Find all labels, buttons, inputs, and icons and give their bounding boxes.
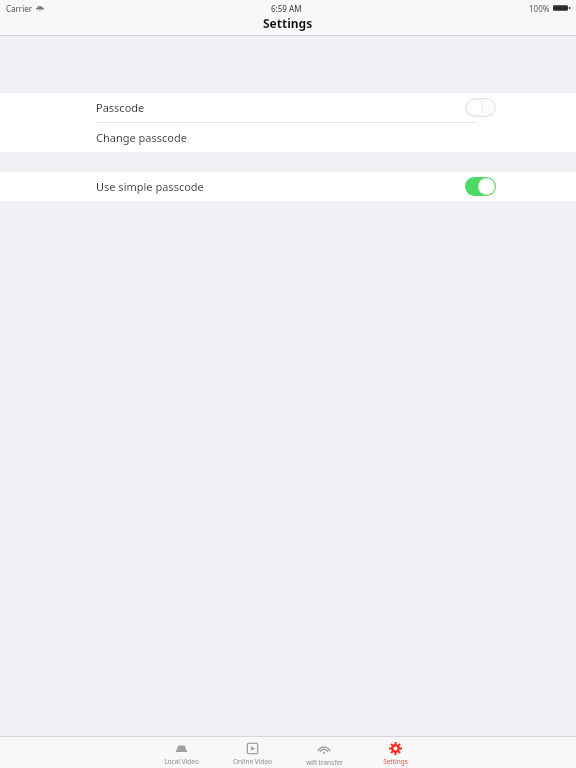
staticText: Local Video [164, 757, 199, 766]
button[interactable]: Off [465, 98, 496, 117]
button[interactable]: Use simple passcode [0, 172, 576, 201]
button[interactable]: Settings [364, 736, 426, 768]
staticText: Settings [263, 15, 313, 31]
staticText: Passcode [96, 100, 145, 115]
staticText: Online Video [233, 757, 272, 766]
staticText: Carrier [6, 3, 33, 14]
button[interactable]: Change passcode [0, 123, 576, 152]
staticText: Use simple passcode [96, 179, 204, 194]
button[interactable]: Passcode [0, 93, 576, 122]
staticText: Change passcode [96, 130, 187, 145]
button[interactable]: wifi transfer [293, 736, 355, 768]
staticText: 100% [529, 3, 550, 14]
button[interactable]: Online Video [221, 736, 283, 768]
staticText: wifi transfer [306, 758, 343, 767]
button[interactable]: Local Video [150, 736, 212, 768]
staticText: 6:59 AM [271, 3, 302, 14]
button[interactable]: On [465, 177, 496, 196]
staticText: Settings [383, 757, 408, 766]
